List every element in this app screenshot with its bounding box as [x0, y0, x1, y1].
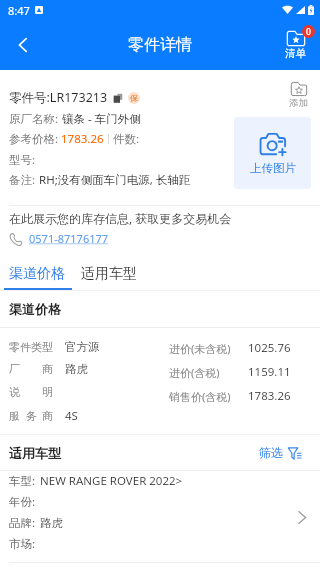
button[interactable]: Back — [0, 22, 46, 68]
staticText: 上传图片 — [250, 161, 296, 175]
staticText: 清单 — [285, 47, 306, 60]
staticText: 1025.76 — [248, 340, 291, 356]
staticText: 1159.11 — [248, 364, 291, 380]
staticText: 在此展示您的库存信息, 获取更多交易机会 — [9, 210, 232, 226]
staticText: 型 — [42, 340, 53, 354]
staticText: 年份: — [9, 494, 36, 510]
button[interactable]: 适用车型 — [74, 258, 144, 290]
staticText: 服 — [9, 409, 20, 423]
staticText: 品牌: — [9, 515, 36, 531]
staticText: 镶条 - 车门外侧 — [62, 111, 141, 127]
button[interactable]: 0571-87176177 — [9, 231, 109, 246]
staticText: 原厂名称: — [9, 111, 59, 127]
staticText: 8:47 — [8, 3, 30, 18]
staticText: 明 — [42, 385, 53, 399]
staticText: 1783.26 — [248, 388, 291, 404]
staticText: 说 — [9, 385, 20, 399]
staticText: 参考价格: — [9, 131, 59, 147]
staticText: 添加 — [289, 97, 308, 109]
staticText: RH;没有侧面车门电源, 长轴距 — [39, 172, 191, 188]
staticText: 销售价(含税) — [169, 389, 231, 404]
staticText: 务 — [26, 409, 37, 423]
staticText: 官方源 — [65, 340, 100, 354]
button[interactable]: 添加 — [289, 82, 308, 109]
button[interactable]: Copy part number — [113, 92, 124, 104]
staticText: 零 — [9, 340, 20, 354]
staticText: 4S — [65, 408, 78, 424]
staticText: 备注: — [9, 172, 36, 188]
staticText: 0 — [306, 26, 311, 38]
staticText: 件 — [20, 340, 31, 354]
button[interactable]: 上传图片 — [234, 117, 311, 189]
button[interactable]: 筛选 — [259, 445, 302, 460]
staticText: 进价(未含税) — [169, 341, 231, 356]
staticText: 1783.26 — [61, 131, 104, 147]
staticText: 适用车型 — [9, 445, 61, 461]
staticText: 进价(含税) — [169, 365, 220, 380]
staticText: 商 — [42, 409, 53, 423]
staticText: 类 — [31, 340, 42, 354]
staticText: 0571-87176177 — [29, 231, 109, 246]
staticText: 路虎 — [40, 516, 63, 530]
button[interactable]: 车型: — [0, 471, 320, 563]
staticText: 零件详情 — [128, 35, 192, 55]
button[interactable]: Warranty — [128, 92, 140, 104]
button[interactable]: 渠道价格 — [0, 258, 74, 290]
staticText: 市场: — [9, 536, 36, 552]
staticText: 零件号:LR173213 — [9, 89, 108, 106]
staticText: 商 — [42, 362, 53, 376]
staticText: 渠道价格 — [9, 265, 65, 283]
staticText: NEW RANGE ROVER 2022> — [40, 473, 183, 489]
staticText: 车型: — [9, 473, 36, 489]
staticText: 型号: — [9, 152, 36, 168]
staticText: 厂 — [9, 362, 20, 376]
staticText: 路虎 — [65, 362, 88, 376]
staticText: 保 — [130, 93, 138, 103]
staticText: 渠道价格 — [9, 301, 61, 317]
staticText: 适用车型 — [81, 265, 137, 283]
staticText: 筛选 — [259, 445, 283, 460]
staticText: 件数: — [113, 131, 140, 147]
button[interactable]: 0 — [285, 31, 306, 60]
